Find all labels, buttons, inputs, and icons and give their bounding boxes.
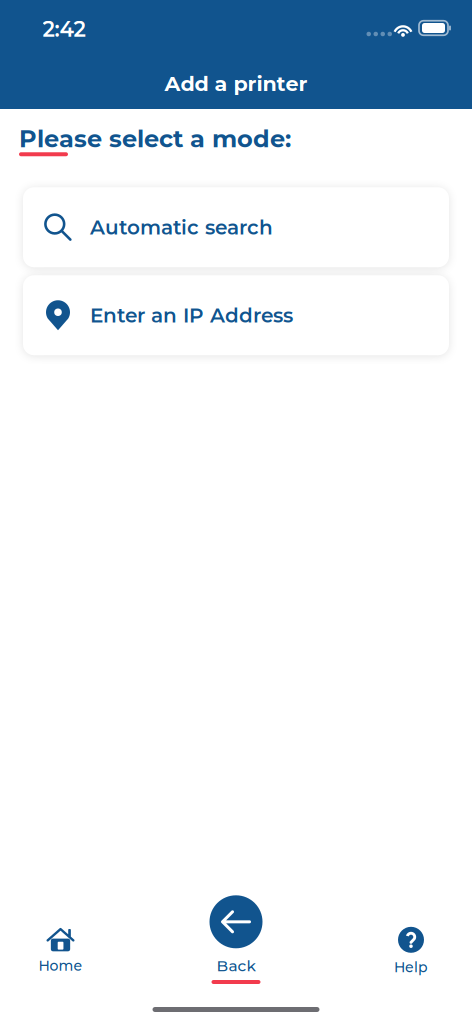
staticText: Enter an IP Address [90, 303, 293, 327]
staticText: Help [394, 959, 428, 976]
button[interactable]: Help [363, 927, 459, 976]
button[interactable]: Automatic search [23, 187, 449, 267]
staticText: Add a printer [164, 71, 307, 96]
staticText: Home [38, 957, 82, 974]
button[interactable]: Home [12, 925, 108, 974]
staticText: Automatic search [90, 215, 273, 239]
staticText: Back [216, 956, 255, 975]
button[interactable]: Back [181, 895, 291, 984]
staticText: Please select a mode: [19, 124, 291, 153]
staticText: 2:42 [42, 16, 85, 42]
button[interactable]: Enter an IP Address [23, 275, 449, 355]
